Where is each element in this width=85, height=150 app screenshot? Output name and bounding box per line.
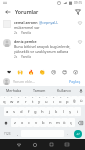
button[interactable]: b bbox=[40, 118, 47, 127]
staticText: h bbox=[41, 109, 44, 115]
staticText: Kullanıcı bbox=[57, 88, 72, 93]
button[interactable]: 4 bbox=[22, 96, 29, 105]
staticText: q bbox=[3, 99, 6, 105]
button[interactable]: h bbox=[39, 107, 46, 116]
button[interactable]: c bbox=[26, 118, 33, 127]
staticText: Tamam bbox=[33, 88, 46, 93]
button[interactable]: 5 bbox=[29, 96, 36, 105]
button[interactable]: g bbox=[32, 107, 39, 116]
button[interactable]: deniz.pembe bbox=[0, 36, 85, 60]
button[interactable]: ?123 bbox=[0, 129, 14, 138]
button[interactable]: 6 bbox=[36, 96, 43, 105]
button[interactable]: 8 bbox=[50, 96, 57, 105]
button[interactable]: x bbox=[19, 118, 26, 127]
button[interactable]: d bbox=[18, 107, 25, 116]
button[interactable]: Enter bbox=[74, 130, 82, 138]
button[interactable]: Voice input bbox=[77, 86, 84, 95]
button[interactable]: 🔥 bbox=[28, 68, 35, 75]
button[interactable]: Paylaş bbox=[68, 79, 82, 84]
button[interactable]: Shift bbox=[0, 118, 11, 127]
staticText: ü bbox=[80, 98, 83, 104]
button[interactable]: l bbox=[60, 107, 67, 116]
button[interactable]: ö bbox=[61, 118, 68, 127]
staticText: deniz.pembe bbox=[14, 39, 37, 44]
staticText: 0 bbox=[67, 96, 69, 99]
staticText: Yorum ekle... bbox=[13, 79, 35, 84]
button[interactable]: ş bbox=[67, 107, 74, 116]
staticText: 5 bbox=[32, 96, 34, 99]
button[interactable]: 2 bbox=[8, 96, 15, 105]
staticText: Paylaş bbox=[69, 79, 81, 84]
button[interactable]: Yorum ekle... bbox=[13, 79, 68, 84]
button[interactable]: a bbox=[4, 107, 11, 116]
staticText: m bbox=[56, 120, 60, 126]
button[interactable]: Yanıtla bbox=[21, 55, 31, 59]
button[interactable]: Recents bbox=[43, 139, 59, 150]
staticText: w bbox=[10, 99, 14, 105]
button[interactable]: ç bbox=[68, 118, 75, 127]
button[interactable]: 3 bbox=[15, 96, 22, 105]
button[interactable]: ü bbox=[78, 96, 85, 105]
button[interactable]: Back bbox=[11, 139, 27, 150]
button[interactable]: 😍 bbox=[61, 68, 68, 75]
button[interactable]: Kullanıcı bbox=[52, 86, 77, 95]
button[interactable]: j bbox=[46, 107, 53, 116]
button[interactable]: Back bbox=[3, 7, 12, 16]
button[interactable]: Send bbox=[73, 7, 82, 16]
staticText: 👏 bbox=[39, 69, 46, 75]
staticText: , bbox=[17, 131, 19, 136]
button[interactable]: s bbox=[11, 107, 18, 116]
button[interactable]: f bbox=[25, 107, 32, 116]
staticText: i bbox=[77, 109, 79, 115]
staticText: ?123 bbox=[4, 132, 11, 136]
button[interactable]: cemal.zeronn bbox=[0, 17, 85, 36]
button[interactable]: Like bbox=[77, 20, 83, 26]
staticText: 3 bbox=[18, 96, 20, 99]
button[interactable]: 🙌 bbox=[17, 68, 24, 75]
button[interactable]: Like bbox=[77, 39, 83, 45]
staticText: 7 bbox=[46, 96, 48, 99]
staticText: Yorumlar bbox=[15, 8, 39, 15]
button[interactable]: i bbox=[74, 107, 81, 116]
staticText: 😢 bbox=[51, 69, 57, 75]
button[interactable]: Tamam bbox=[27, 86, 52, 95]
staticText: p bbox=[66, 99, 69, 105]
button[interactable]: 0 bbox=[64, 96, 71, 105]
staticText: x bbox=[21, 120, 24, 126]
staticText: 8 bbox=[53, 96, 55, 99]
button[interactable]: m bbox=[54, 118, 61, 127]
staticText: d bbox=[20, 109, 23, 115]
staticText: ş bbox=[69, 109, 72, 115]
staticText: 🙌 bbox=[17, 69, 24, 75]
button[interactable]: ğ bbox=[71, 96, 78, 105]
button[interactable]: 9 bbox=[57, 96, 64, 105]
button[interactable]: Yanıtla bbox=[21, 31, 31, 35]
staticText: ı bbox=[53, 99, 55, 105]
button[interactable]: 7 bbox=[43, 96, 50, 105]
staticText: n bbox=[49, 120, 52, 126]
button[interactable]: n bbox=[47, 118, 54, 127]
button[interactable]: , bbox=[14, 128, 21, 139]
button[interactable]: z bbox=[11, 118, 19, 127]
button[interactable]: ❤️ bbox=[6, 68, 13, 75]
staticText: 2s bbox=[14, 55, 18, 59]
staticText: v bbox=[35, 120, 38, 126]
button[interactable]: Merhaba bbox=[1, 86, 27, 95]
staticText: ç bbox=[70, 120, 73, 126]
button[interactable]: v bbox=[33, 118, 40, 127]
button[interactable]: Home bbox=[27, 139, 43, 150]
button[interactable]: 😮 bbox=[72, 68, 79, 75]
button[interactable]: Switch keyboard bbox=[59, 139, 75, 150]
button[interactable]: Backspace bbox=[75, 118, 85, 127]
button[interactable]: 1 bbox=[0, 96, 8, 105]
staticText: ❤️ bbox=[7, 69, 12, 75]
button[interactable]: 😢 bbox=[50, 68, 57, 75]
staticText: 😍 bbox=[62, 69, 68, 75]
staticText: . bbox=[67, 131, 69, 136]
staticText: t bbox=[32, 99, 34, 105]
button[interactable]: k bbox=[53, 107, 60, 116]
staticText: o bbox=[59, 99, 62, 105]
button[interactable]: 👏 bbox=[39, 68, 46, 75]
